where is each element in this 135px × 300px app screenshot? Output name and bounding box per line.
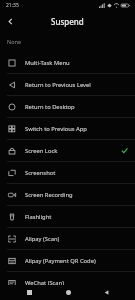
- button[interactable]: Alipay (Payment QR Code): [0, 250, 135, 271]
- staticText: Return to Previous Level: [25, 81, 91, 89]
- button[interactable]: Home: [58, 285, 78, 300]
- button[interactable]: Screen Lock: [0, 140, 135, 161]
- button[interactable]: Back: [0, 11, 20, 31]
- staticText: Flashlight: [25, 213, 52, 221]
- staticText: Switch to Previous App: [25, 125, 87, 133]
- button[interactable]: Back: [96, 285, 116, 300]
- button[interactable]: Multi-Task Menu: [0, 52, 135, 73]
- button[interactable]: WeChat (Scan): [0, 272, 135, 293]
- button[interactable]: WeChat (Payment QR Code): [0, 294, 135, 300]
- staticText: WeChat (Scan): [25, 279, 64, 287]
- staticText: Alipay (Scan): [25, 235, 60, 243]
- staticText: Alipay (Payment QR Code): [25, 257, 96, 265]
- button[interactable]: Recents: [19, 285, 39, 300]
- button[interactable]: Flashlight: [0, 206, 135, 227]
- button[interactable]: Return to Previous Level: [0, 74, 135, 95]
- button[interactable]: Switch to Previous App: [0, 118, 135, 139]
- staticText: 21:35: [6, 2, 19, 9]
- staticText: None: [7, 38, 22, 45]
- button[interactable]: Return to Desktop: [0, 96, 135, 117]
- staticText: Multi-Task Menu: [25, 59, 70, 67]
- staticText: Screen Lock: [25, 147, 58, 155]
- staticText: Return to Desktop: [25, 103, 75, 111]
- staticText: WeChat (Payment QR Code): [25, 294, 101, 300]
- button[interactable]: Screenshot: [0, 162, 135, 183]
- staticText: Screenshot: [25, 169, 56, 177]
- staticText: Screen Recording: [25, 191, 73, 199]
- staticText: Suspend: [51, 16, 84, 27]
- button[interactable]: Alipay (Scan): [0, 228, 135, 249]
- button[interactable]: Screen Recording: [0, 184, 135, 205]
